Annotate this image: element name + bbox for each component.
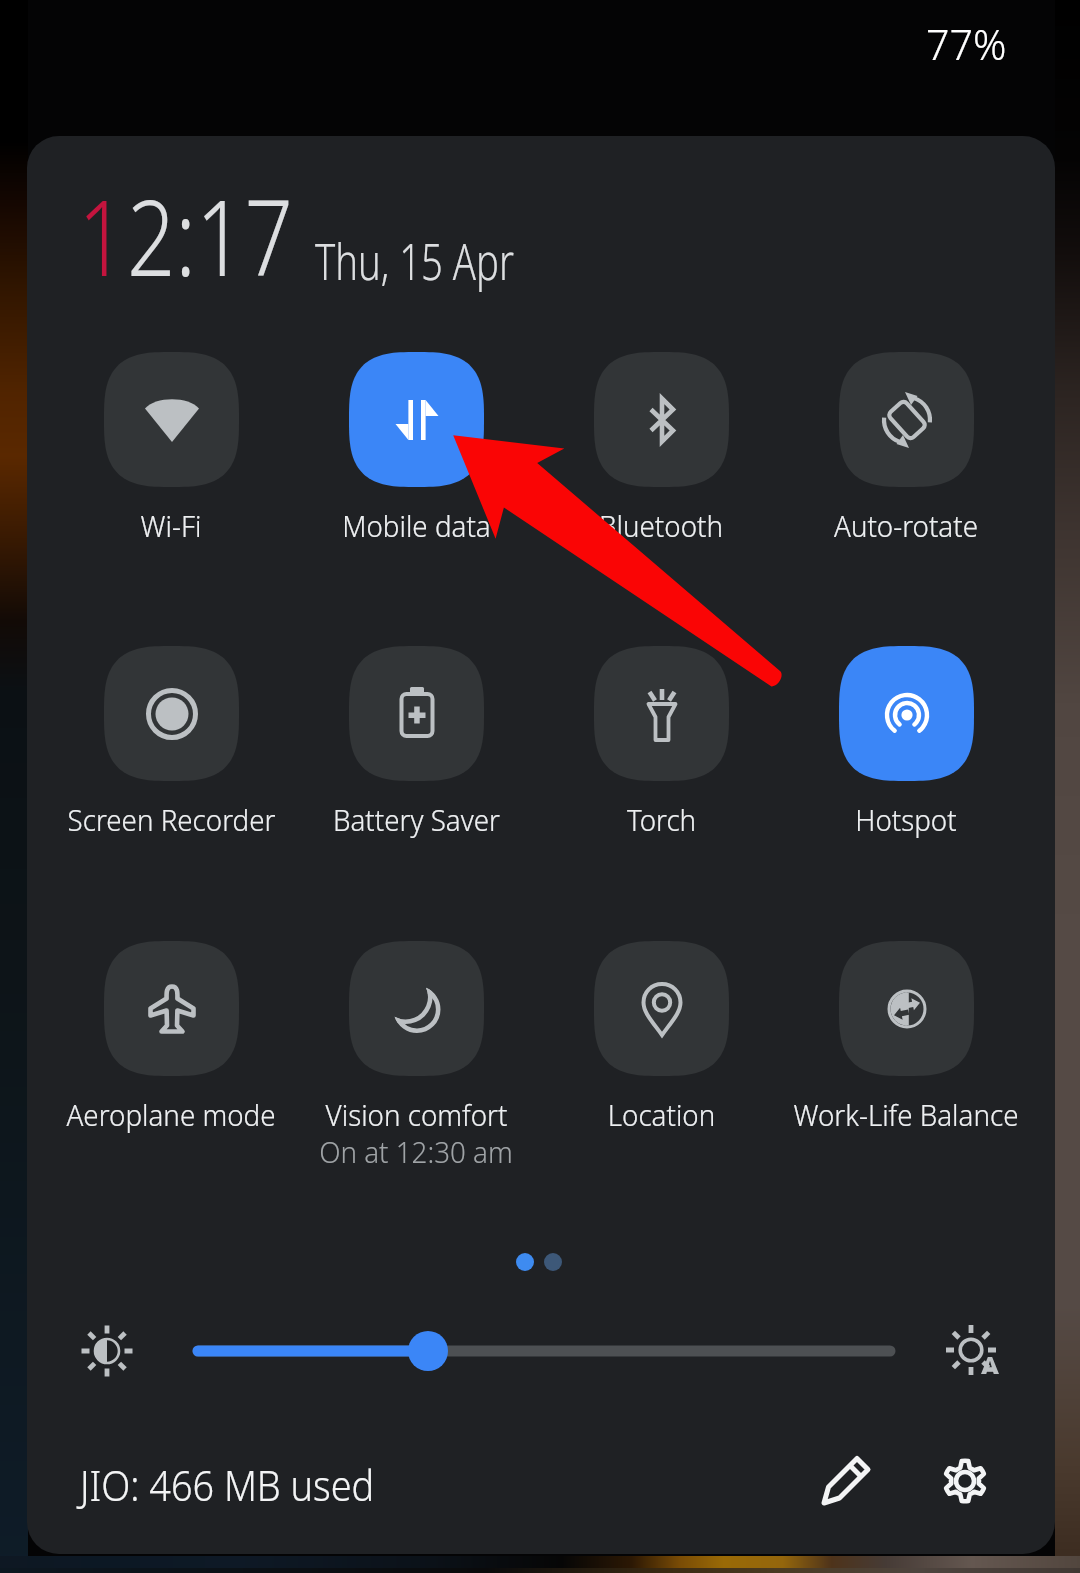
staticText: Vision comfort	[325, 1094, 508, 1135]
button[interactable]: Settings	[920, 1436, 1010, 1526]
button[interactable]: Auto brightness	[938, 1316, 1008, 1386]
button[interactable]: Vision comfort	[291, 941, 541, 1176]
button[interactable]: 1	[78, 165, 342, 307]
staticText: 1	[78, 165, 127, 307]
button[interactable]: Bluetooth	[536, 352, 786, 546]
staticText: JIO: 466 MB used	[80, 1456, 374, 1513]
staticText: Bluetooth	[599, 505, 723, 546]
button[interactable]: Location	[536, 941, 786, 1135]
button[interactable]: Mobile data	[291, 352, 541, 546]
staticText: On at 12:30 am	[319, 1131, 513, 1172]
button[interactable]: Screen Recorder	[46, 646, 296, 840]
button[interactable]: Wi-Fi	[46, 352, 296, 546]
button[interactable]: Work-Life Balance	[781, 941, 1031, 1135]
staticText: Mobile data	[342, 505, 491, 546]
staticText: Thu, 15 Apr	[315, 228, 515, 295]
button[interactable]: Auto-rotate	[781, 352, 1031, 546]
button[interactable]: Brightness slider	[182, 1331, 902, 1371]
staticText: Aeroplane mode	[66, 1094, 275, 1135]
button[interactable]: Aeroplane mode	[46, 941, 296, 1135]
button[interactable]: Page 1 of 2	[507, 1246, 577, 1278]
button[interactable]: Edit	[800, 1437, 890, 1527]
staticText: Auto-rotate	[834, 505, 978, 546]
staticText: Wi-Fi	[140, 505, 201, 546]
button[interactable]: JIO: 466 MB used	[74, 1448, 413, 1521]
button[interactable]: Brightness	[72, 1316, 142, 1386]
staticText: 77%	[926, 15, 1007, 72]
staticText: Work-Life Balance	[793, 1094, 1019, 1135]
staticText: Torch	[627, 799, 696, 840]
staticText: Battery Saver	[333, 799, 500, 840]
button[interactable]: Torch	[536, 646, 786, 840]
staticText: 2:17	[127, 165, 293, 307]
staticText: Screen Recorder	[67, 799, 275, 840]
staticText: Location	[607, 1094, 716, 1135]
button[interactable]: Thu, 15 Apr	[315, 228, 571, 295]
staticText: Hotspot	[855, 799, 957, 840]
button[interactable]: Battery Saver	[291, 646, 541, 840]
button[interactable]: Hotspot	[781, 646, 1031, 840]
